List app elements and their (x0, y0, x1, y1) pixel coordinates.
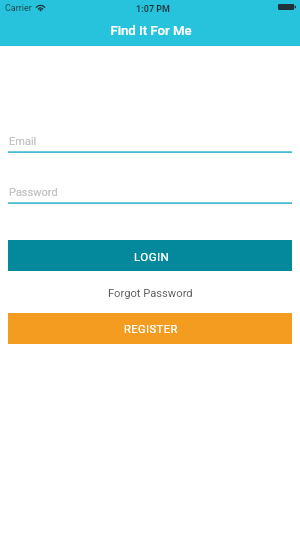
staticText: Carrier (5, 3, 32, 14)
button[interactable]: LOGIN (8, 240, 292, 271)
staticText: Email (9, 135, 37, 148)
staticText: REGISTER (124, 323, 178, 336)
button[interactable]: Forgot Password (0, 285, 300, 302)
other: Wi-Fi signal (36, 4, 45, 11)
button[interactable]: REGISTER (8, 313, 292, 344)
staticText: LOGIN (134, 250, 170, 264)
button[interactable]: Password (0, 181, 300, 206)
other: Battery full (278, 4, 296, 10)
button[interactable]: Email (0, 130, 300, 155)
staticText: Find It For Me (1, 23, 300, 38)
staticText: 1:07 PM (3, 4, 300, 15)
staticText: Forgot Password (108, 287, 193, 300)
staticText: Password (9, 186, 58, 199)
